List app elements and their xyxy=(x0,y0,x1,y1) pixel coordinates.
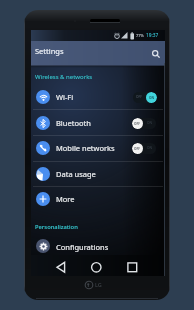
button[interactable]: Settings xyxy=(31,41,165,66)
button[interactable]: More xyxy=(31,186,165,211)
staticText: Mobile networks xyxy=(56,143,115,153)
staticText: LG xyxy=(95,281,102,288)
staticText: Configurations xyxy=(56,242,109,252)
button[interactable]: Wi-Fi xyxy=(31,84,165,109)
button[interactable] xyxy=(127,262,138,273)
button[interactable]: Mobile networks xyxy=(31,135,165,160)
button[interactable]: OFF xyxy=(132,143,156,154)
staticText: ON xyxy=(149,96,155,100)
staticText: 77% xyxy=(136,33,144,38)
staticText: ON xyxy=(147,121,152,125)
button[interactable]: OFF xyxy=(132,118,156,129)
staticText: More xyxy=(56,194,75,204)
staticText: ON xyxy=(147,146,152,150)
button[interactable] xyxy=(56,262,67,273)
button[interactable] xyxy=(91,262,102,273)
staticText: OFF xyxy=(136,95,142,99)
staticText: Wi-Fi xyxy=(56,92,74,102)
staticText: OFF xyxy=(134,147,141,151)
button[interactable] xyxy=(151,49,161,59)
staticText: Data usage xyxy=(56,169,96,179)
staticText: Bluetooth xyxy=(56,118,91,128)
staticText: 19:37 xyxy=(146,32,159,39)
button[interactable]: Configurations xyxy=(31,234,165,257)
staticText: Settings xyxy=(35,46,64,56)
staticText: OFF xyxy=(134,122,141,126)
staticText: Personalization xyxy=(35,223,78,231)
button[interactable]: Data usage xyxy=(31,161,165,186)
button[interactable]: Bluetooth xyxy=(31,110,165,135)
button[interactable]: OFF xyxy=(133,92,157,103)
staticText: Wireless & networks xyxy=(35,73,93,81)
